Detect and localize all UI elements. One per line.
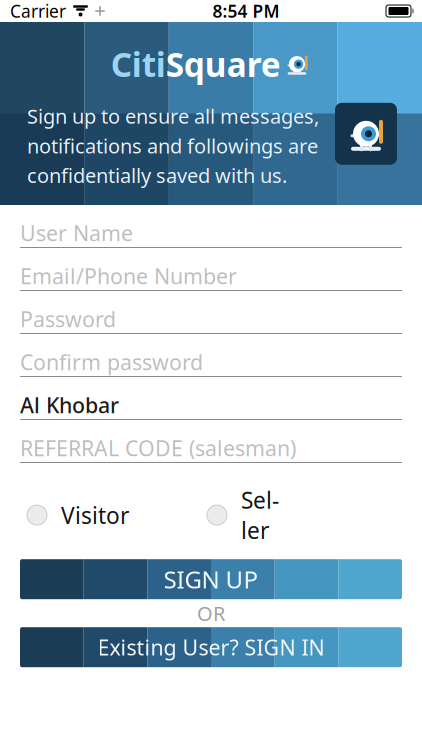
staticText: User Name <box>20 219 133 247</box>
button[interactable]: Visitor <box>27 500 207 530</box>
staticText: REFERRAL CODE (salesman) <box>20 434 296 462</box>
staticText: Sign up to ensure all messages, <box>27 103 319 129</box>
staticText: Al Khobar <box>20 391 119 419</box>
staticText: Password <box>20 305 116 333</box>
staticText: Visitor <box>61 500 129 530</box>
staticText: Email/Phone Number <box>20 262 237 290</box>
staticText: Seller <box>241 485 279 545</box>
staticText: confidentially saved with us. <box>27 162 287 188</box>
button[interactable]: Existing User? SIGN IN <box>20 627 402 667</box>
staticText: Citi <box>111 42 166 86</box>
button[interactable]: Seller <box>207 485 304 545</box>
button[interactable]: SIGN UP <box>20 559 402 599</box>
staticText: notifications and followings are <box>27 132 318 159</box>
staticText: OR <box>197 600 225 626</box>
staticText: Existing User? SIGN IN <box>97 633 324 661</box>
staticText: 8:54 PM <box>212 0 279 22</box>
staticText: Carrier <box>10 0 66 22</box>
staticText: Square <box>166 42 281 86</box>
staticText: Confirm password <box>20 348 203 376</box>
staticText: SIGN UP <box>163 563 258 595</box>
